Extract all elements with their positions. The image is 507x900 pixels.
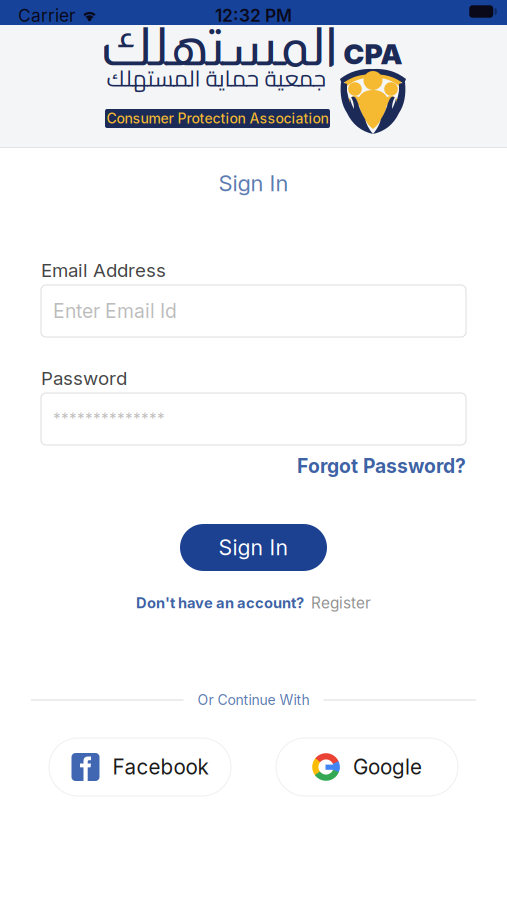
button[interactable]: Sign In [180, 524, 327, 571]
staticText: Sign In [218, 170, 288, 197]
staticText: جمعية حماية المستهلك [106, 57, 326, 99]
button[interactable]: Google [276, 738, 458, 796]
button[interactable]: Forgot Password? [41, 454, 466, 478]
staticText: Consumer Protection Association [106, 110, 328, 127]
staticText: ************** [53, 410, 165, 428]
staticText: Email Address [41, 259, 166, 282]
staticText: Enter Email Id [53, 299, 177, 323]
staticText: Password [41, 367, 127, 390]
staticText: Forgot Password? [297, 454, 466, 478]
staticText: Sign In [218, 535, 288, 560]
staticText: Or Continue With [197, 691, 309, 708]
staticText: Google [353, 754, 422, 779]
staticText: 12:32 PM [215, 5, 292, 26]
button[interactable]: Facebook [49, 738, 231, 796]
staticText: Don't have an account? [136, 594, 304, 612]
staticText: Register [311, 594, 371, 612]
staticText: CPA [343, 37, 402, 71]
button[interactable]: Don't have an account? [0, 592, 507, 614]
staticText: المستهلك [100, 17, 337, 76]
staticText: Facebook [112, 754, 208, 779]
staticText: Carrier [18, 5, 76, 26]
